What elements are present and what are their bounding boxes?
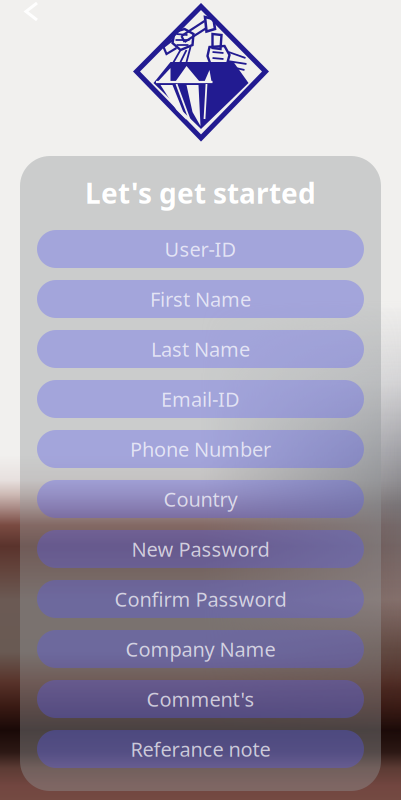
staticText: Phone Number <box>130 436 271 462</box>
button[interactable]: Email-ID <box>37 380 364 418</box>
staticText: New Password <box>131 536 269 562</box>
button[interactable]: Back <box>0 0 41 23</box>
staticText: Email-ID <box>161 386 240 412</box>
button[interactable]: Referance note <box>37 730 364 768</box>
staticText: Country <box>163 486 237 512</box>
staticText: Confirm Password <box>114 586 286 612</box>
button[interactable]: First Name <box>37 280 364 318</box>
button[interactable]: Comment's <box>37 680 364 718</box>
staticText: Let's get started <box>85 174 316 212</box>
staticText: Referance note <box>130 736 270 762</box>
button[interactable]: Last Name <box>37 330 364 368</box>
staticText: Last Name <box>151 336 250 362</box>
button[interactable]: Confirm Password <box>37 580 364 618</box>
button[interactable]: User-ID <box>37 230 364 268</box>
button[interactable]: New Password <box>37 530 364 568</box>
staticText: Comment's <box>146 686 254 712</box>
staticText: User-ID <box>164 236 236 262</box>
button[interactable]: Country <box>37 480 364 518</box>
staticText: Company Name <box>125 636 275 662</box>
staticText: First Name <box>150 286 251 312</box>
button[interactable]: Company Name <box>37 630 364 668</box>
button[interactable]: Phone Number <box>37 430 364 468</box>
